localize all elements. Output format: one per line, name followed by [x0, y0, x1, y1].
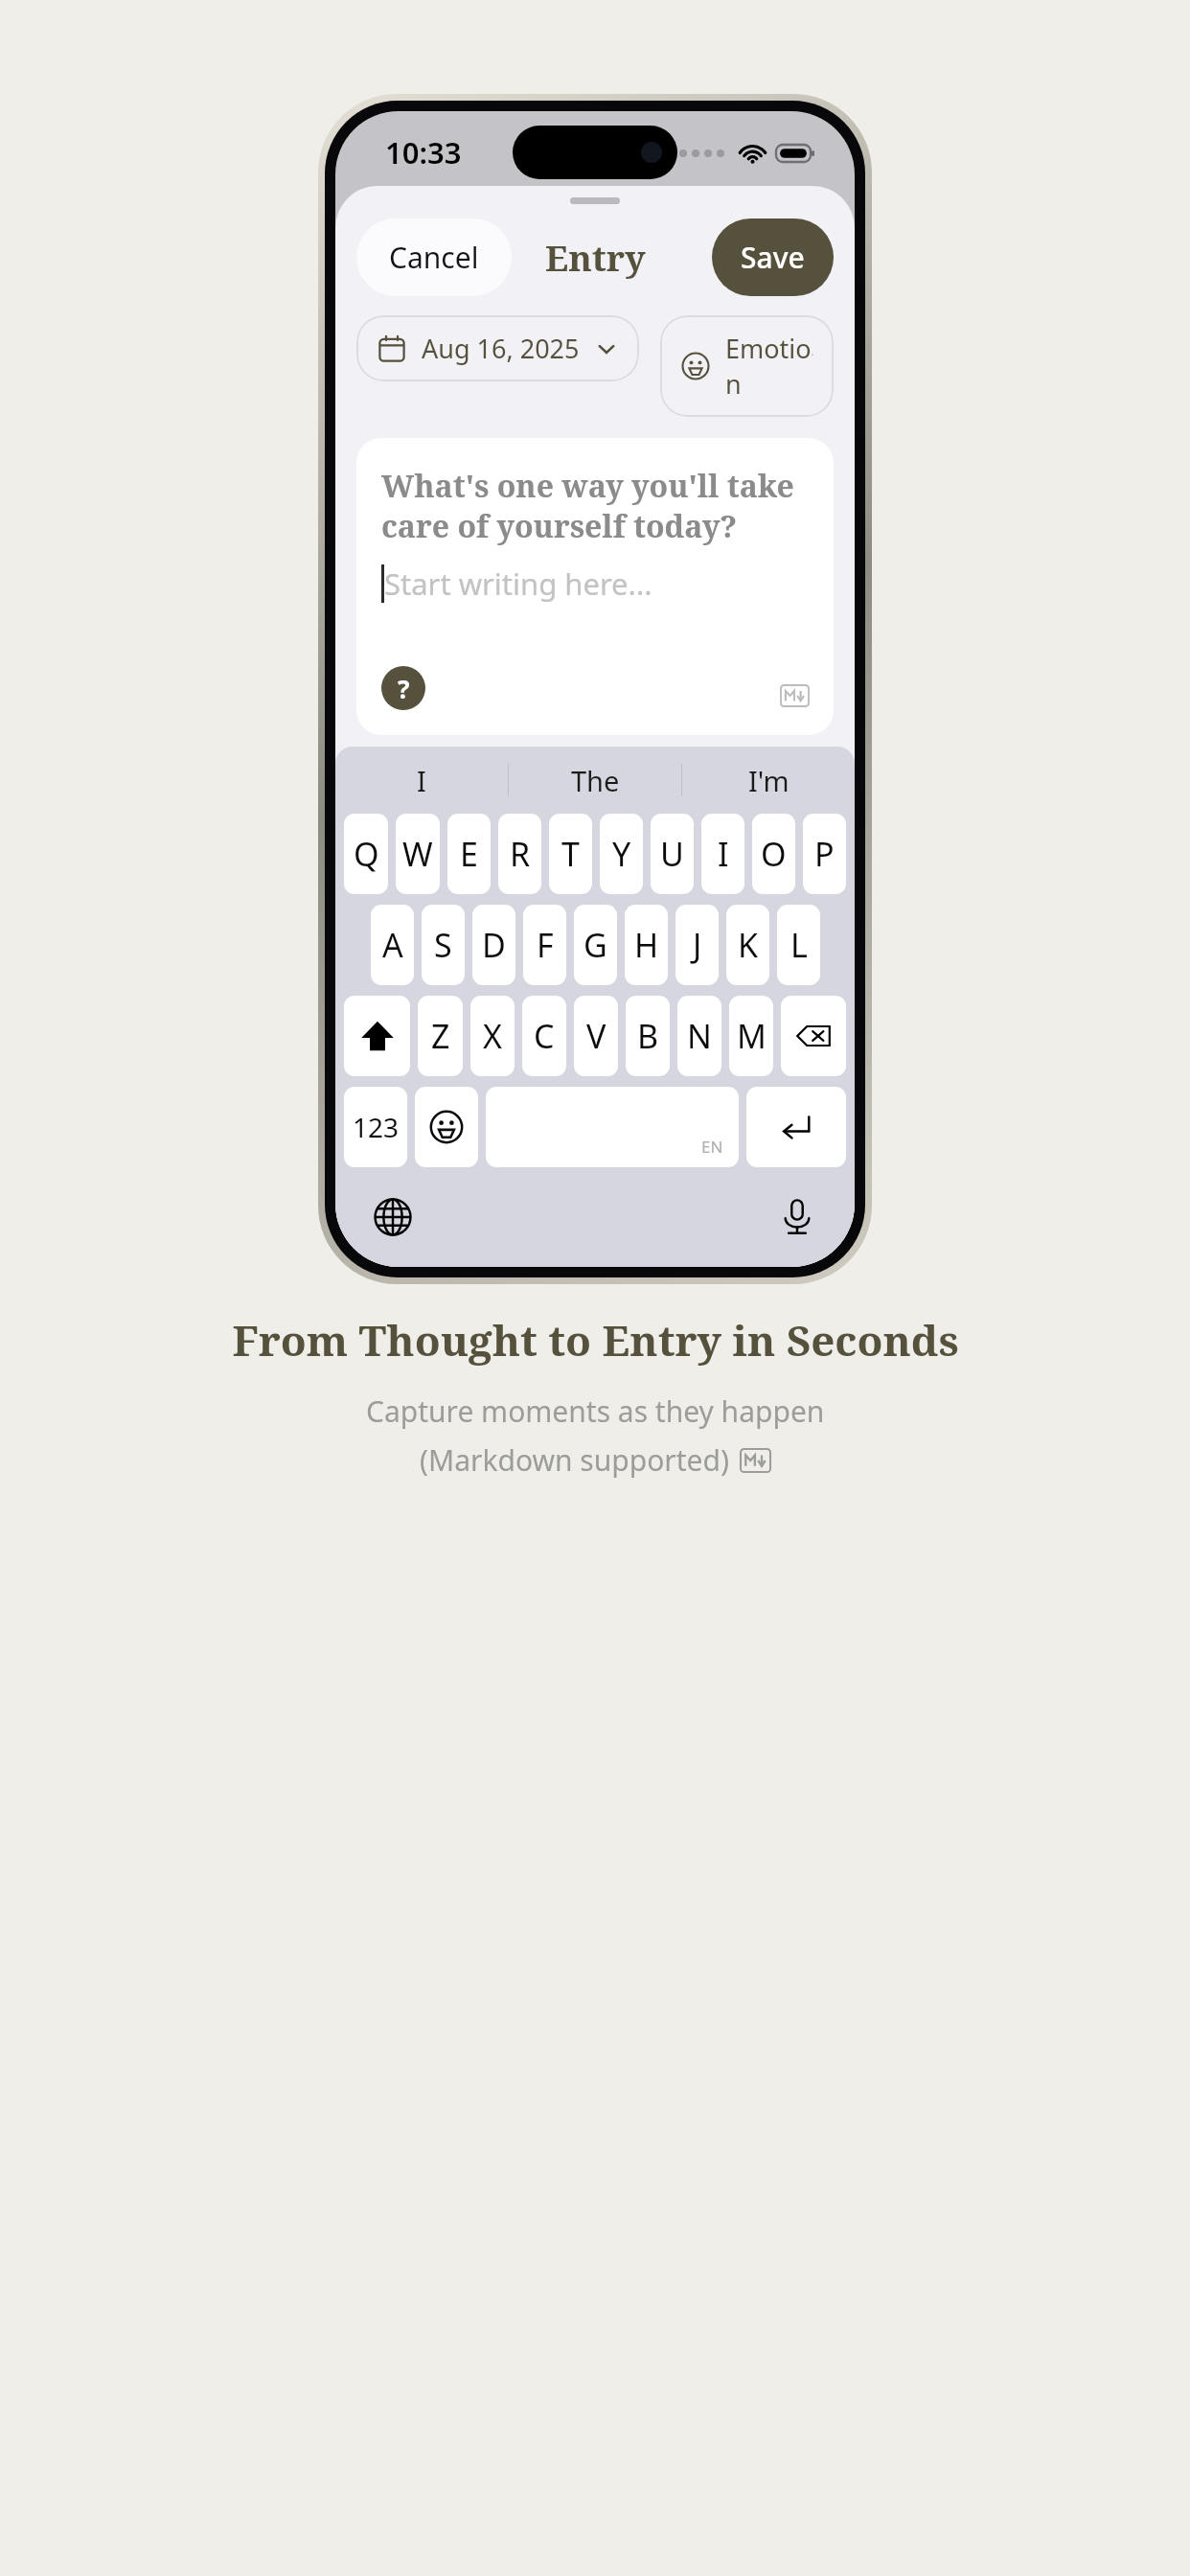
staticText: Z [431, 1014, 450, 1058]
button[interactable]: Dictate [772, 1192, 822, 1242]
staticText: I [718, 832, 729, 876]
staticText: A [382, 923, 403, 967]
staticText: L [790, 923, 808, 967]
staticText: From Thought to Entry in Seconds [232, 1311, 959, 1368]
button[interactable]: W [396, 814, 440, 894]
staticText: F [537, 923, 554, 967]
staticText: Save [741, 238, 805, 277]
button[interactable]: R [498, 814, 541, 894]
button[interactable]: Z [418, 996, 463, 1076]
button[interactable]: Shift [344, 996, 410, 1076]
staticText: R [510, 832, 531, 876]
button[interactable]: X [470, 996, 515, 1076]
staticText: I [417, 762, 426, 799]
staticText: J [693, 923, 702, 967]
staticText: M [737, 1014, 767, 1058]
staticText: G [584, 923, 607, 967]
button[interactable]: H [625, 905, 668, 985]
staticText: Capture moments as they happen [366, 1391, 825, 1431]
button[interactable]: T [549, 814, 592, 894]
staticText: The [571, 762, 620, 799]
button[interactable]: Backspace [781, 996, 846, 1076]
button[interactable]: B [626, 996, 670, 1076]
staticText: Aug 16, 2025 [422, 331, 580, 366]
button[interactable]: Help [381, 666, 425, 710]
button[interactable]: Q [344, 814, 388, 894]
button[interactable]: J [675, 905, 719, 985]
button[interactable]: Emotion [660, 315, 834, 417]
button[interactable]: U [651, 814, 694, 894]
button[interactable]: EN [486, 1087, 739, 1167]
staticText: I'm [748, 762, 790, 799]
staticText: Emotion [725, 331, 812, 402]
staticText: E [460, 832, 478, 876]
button[interactable]: F [523, 905, 566, 985]
staticText: H [634, 923, 659, 967]
staticText: (Markdown supported) [420, 1440, 729, 1480]
staticText: V [586, 1014, 606, 1058]
staticText: T [561, 832, 580, 876]
button[interactable]: C [522, 996, 566, 1076]
staticText: W [402, 832, 433, 876]
staticText: C [534, 1014, 555, 1058]
button[interactable]: P [803, 814, 846, 894]
button[interactable]: G [574, 905, 617, 985]
button[interactable]: L [777, 905, 820, 985]
button[interactable]: Aug 16, 2025 [356, 315, 639, 381]
button[interactable]: I [701, 814, 744, 894]
staticText: X [483, 1014, 502, 1058]
staticText: ? [398, 672, 410, 705]
staticText: U [660, 832, 684, 876]
button[interactable]: I'm [682, 747, 855, 814]
staticText: 10:33 [385, 132, 462, 172]
staticText: O [761, 832, 787, 876]
staticText: Cancel [389, 238, 479, 277]
button[interactable]: K [726, 905, 769, 985]
staticText: Y [612, 832, 631, 876]
staticText: EN [701, 1136, 723, 1158]
button[interactable]: V [574, 996, 618, 1076]
button[interactable]: N [677, 996, 721, 1076]
staticText: K [738, 923, 759, 967]
button[interactable]: Save [712, 218, 834, 296]
button[interactable]: Y [600, 814, 643, 894]
button[interactable]: 123 [344, 1087, 407, 1167]
staticText: D [482, 923, 506, 967]
staticText: Entry [545, 233, 646, 281]
staticText: N [687, 1014, 712, 1058]
button[interactable]: Cancel [356, 218, 512, 296]
staticText: Start writing here... [384, 563, 652, 604]
staticText: P [814, 832, 835, 876]
staticText: 123 [353, 1109, 400, 1145]
button[interactable]: D [472, 905, 515, 985]
button[interactable]: S [422, 905, 465, 985]
staticText: B [637, 1014, 659, 1058]
staticText: S [434, 923, 452, 967]
button[interactable]: A [371, 905, 414, 985]
button[interactable]: I [335, 747, 508, 814]
staticText: What's one way you'll take care of yours… [381, 465, 809, 546]
button[interactable]: The [509, 747, 681, 814]
button[interactable]: Return [746, 1087, 846, 1167]
staticText: Q [354, 832, 379, 876]
button[interactable]: Change keyboard [368, 1192, 418, 1242]
button[interactable]: M [729, 996, 773, 1076]
button[interactable]: Emoji [415, 1087, 478, 1167]
button[interactable]: O [752, 814, 795, 894]
button[interactable]: E [447, 814, 491, 894]
